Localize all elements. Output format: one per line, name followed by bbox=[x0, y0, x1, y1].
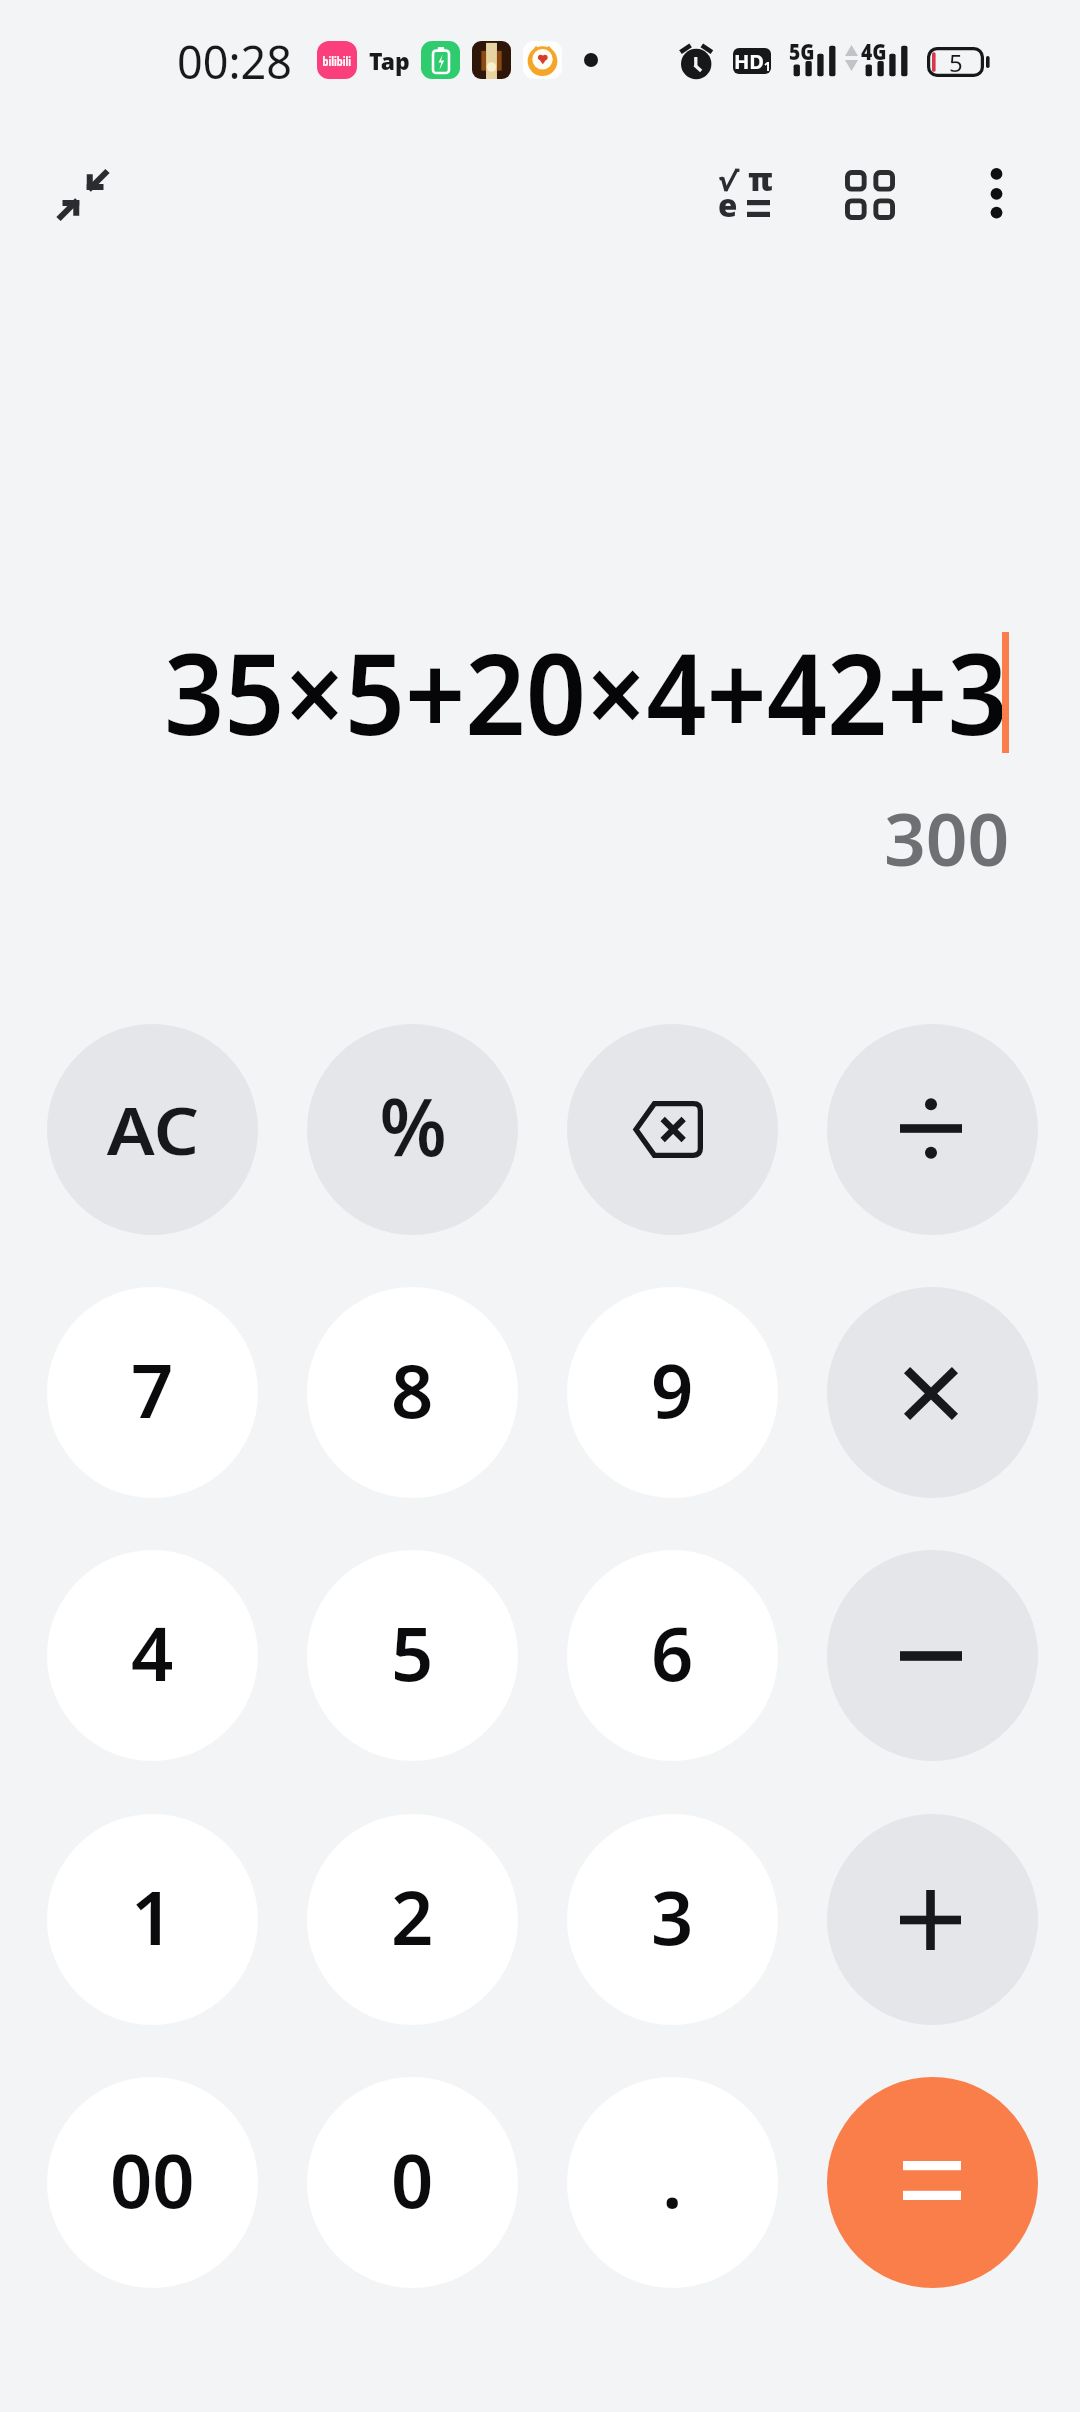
button[interactable]: Equals bbox=[827, 2077, 1038, 2288]
staticText: 35×5+20×4+42+3 bbox=[164, 615, 1008, 768]
staticText: 1 bbox=[764, 58, 771, 74]
button[interactable]: % bbox=[307, 1024, 518, 1235]
staticText: 2 bbox=[391, 1866, 434, 1967]
staticText: 300 bbox=[884, 788, 1010, 887]
staticText: bilibili bbox=[322, 53, 351, 70]
staticText: % bbox=[379, 1070, 447, 1179]
staticText: HD bbox=[734, 48, 764, 74]
button[interactable]: . bbox=[567, 2077, 778, 2288]
button[interactable]: Converters bbox=[820, 145, 920, 245]
staticText: 5 bbox=[391, 1602, 434, 1703]
staticText: Tap bbox=[369, 45, 410, 77]
button[interactable]: 7 bbox=[47, 1287, 258, 1498]
button[interactable]: Scientific mode bbox=[694, 143, 794, 243]
button[interactable]: 3 bbox=[567, 1814, 778, 2025]
button[interactable]: 0 bbox=[307, 2077, 518, 2288]
button[interactable]: 5 bbox=[307, 1550, 518, 1761]
button[interactable]: 1 bbox=[47, 1814, 258, 2025]
staticText: e bbox=[718, 184, 738, 226]
staticText: 7 bbox=[131, 1339, 174, 1440]
staticText: 00:28 bbox=[177, 31, 293, 92]
staticText: π bbox=[748, 158, 773, 200]
staticText: AC bbox=[107, 1086, 199, 1175]
button[interactable]: 2 bbox=[307, 1814, 518, 2025]
staticText: . bbox=[662, 2129, 683, 2230]
staticText: 4G bbox=[861, 36, 887, 67]
button[interactable]: 4 bbox=[47, 1550, 258, 1761]
button[interactable]: 6 bbox=[567, 1550, 778, 1761]
button[interactable]: Subtract bbox=[827, 1550, 1038, 1761]
button[interactable]: 00 bbox=[47, 2077, 258, 2288]
staticText: 5 bbox=[949, 46, 963, 76]
button[interactable]: AC bbox=[47, 1024, 258, 1235]
staticText: 5G bbox=[789, 36, 815, 67]
staticText: 6 bbox=[651, 1602, 694, 1703]
staticText: 0 bbox=[391, 2129, 434, 2230]
staticText: 9 bbox=[651, 1339, 694, 1440]
button[interactable]: More options bbox=[946, 144, 1046, 244]
staticText: 4 bbox=[131, 1602, 174, 1703]
button[interactable]: 8 bbox=[307, 1287, 518, 1498]
staticText: 1 bbox=[131, 1866, 174, 1967]
button[interactable]: 9 bbox=[567, 1287, 778, 1498]
button[interactable]: Multiply bbox=[827, 1287, 1038, 1498]
button[interactable]: Collapse bbox=[35, 147, 131, 243]
button[interactable]: Divide bbox=[827, 1024, 1038, 1235]
staticText: 3 bbox=[651, 1866, 694, 1967]
staticText: 8 bbox=[391, 1339, 434, 1440]
staticText: 00 bbox=[110, 2129, 195, 2230]
button[interactable]: Add bbox=[827, 1814, 1038, 2025]
button[interactable]: Backspace bbox=[567, 1024, 778, 1235]
